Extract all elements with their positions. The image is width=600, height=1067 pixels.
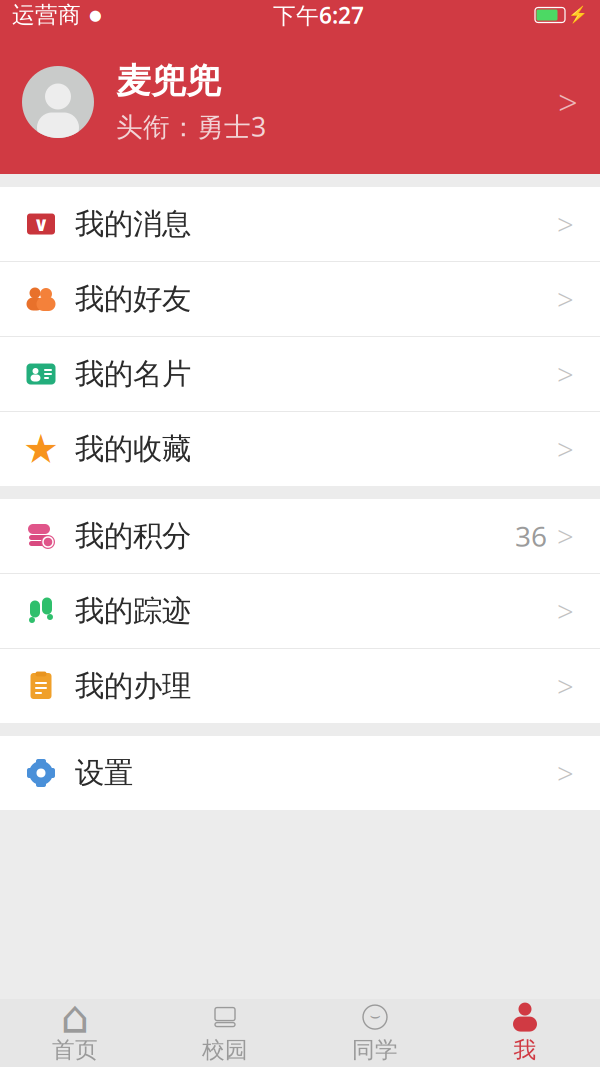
- staticText: ⚡: [568, 6, 588, 24]
- button[interactable]: ⌣: [300, 999, 450, 1067]
- staticText: >: [557, 516, 574, 555]
- staticText: >: [557, 279, 574, 318]
- staticText: 我的收藏: [75, 431, 191, 467]
- staticText: 我的踪迹: [75, 593, 191, 629]
- staticText: >: [558, 79, 578, 125]
- staticText: ⌣: [369, 1008, 380, 1024]
- button[interactable]: 校园: [150, 999, 300, 1067]
- staticText: 麦兜兜: [116, 60, 221, 103]
- button[interactable]: 我的积分: [0, 499, 600, 573]
- staticText: ∨: [33, 213, 49, 235]
- staticText: >: [557, 591, 574, 630]
- staticText: 我的名片: [75, 356, 191, 392]
- staticText: >: [557, 204, 574, 243]
- staticText: 头衔：勇士3: [116, 109, 266, 144]
- button[interactable]: ∨: [0, 187, 600, 261]
- staticText: >: [557, 429, 574, 468]
- staticText: ⌂: [60, 991, 89, 1043]
- button[interactable]: 设置: [0, 736, 600, 810]
- staticText: ●: [89, 7, 102, 23]
- staticText: 我的好友: [75, 281, 191, 317]
- staticText: 36: [515, 517, 547, 555]
- staticText: 校园: [202, 1036, 248, 1064]
- button[interactable]: 我: [450, 999, 600, 1067]
- button[interactable]: 我的名片: [0, 337, 600, 411]
- staticText: 我的消息: [75, 206, 191, 242]
- button[interactable]: ⌂: [0, 999, 150, 1067]
- staticText: 我的积分: [75, 518, 191, 554]
- staticText: 同学: [352, 1036, 398, 1064]
- staticText: 下午6:27: [273, 0, 364, 30]
- staticText: 设置: [75, 755, 133, 791]
- staticText: 运营商: [12, 1, 81, 29]
- staticText: 首页: [52, 1036, 98, 1064]
- staticText: >: [557, 666, 574, 705]
- button[interactable]: 麦兜兜: [0, 30, 600, 174]
- button[interactable]: 我的办理: [0, 649, 600, 723]
- staticText: >: [557, 354, 574, 393]
- button[interactable]: ★: [0, 412, 600, 486]
- staticText: >: [557, 753, 574, 792]
- button[interactable]: 我的踪迹: [0, 574, 600, 648]
- staticText: 我: [513, 1036, 536, 1064]
- button[interactable]: 我的好友: [0, 262, 600, 336]
- staticText: 我的办理: [75, 668, 191, 704]
- staticText: ★: [23, 426, 59, 472]
